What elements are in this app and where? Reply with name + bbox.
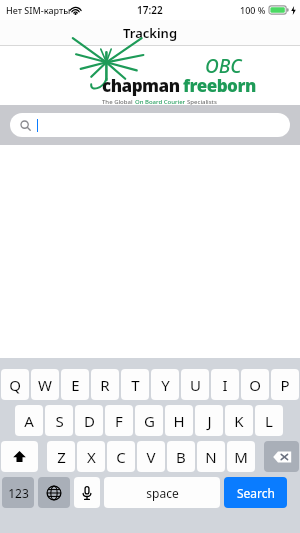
staticText: C (116, 447, 126, 467)
staticText: F (115, 411, 123, 431)
button[interactable]: H (165, 405, 193, 436)
button[interactable]: I (211, 369, 239, 400)
button[interactable]: Emoji keyboard (38, 477, 70, 508)
button[interactable]: R (91, 369, 119, 400)
staticText: The Global (102, 98, 135, 105)
button[interactable]: F (105, 405, 133, 436)
staticText: U (190, 375, 201, 395)
button[interactable]: Backspace (264, 441, 299, 472)
staticText: E (71, 375, 80, 395)
staticText: freeborn (183, 74, 256, 97)
button[interactable]: K (225, 405, 253, 436)
staticText: L (265, 411, 273, 431)
staticText: 17:22 (137, 3, 163, 17)
button[interactable]: V (137, 441, 165, 472)
button[interactable]: B (167, 441, 195, 472)
staticText: I (222, 375, 228, 395)
staticText: space (146, 485, 179, 501)
staticText: O (249, 375, 261, 395)
staticText: Specialists (187, 98, 217, 105)
button[interactable]: 123 (2, 477, 34, 508)
button[interactable]: Search (224, 477, 287, 508)
staticText: H (173, 411, 185, 431)
staticText: Y (161, 375, 170, 395)
staticText: A (24, 411, 34, 431)
button[interactable]: O (241, 369, 269, 400)
staticText: chapman (102, 74, 180, 97)
staticText: P (280, 375, 290, 395)
button[interactable]: Shift (1, 441, 38, 472)
button[interactable]: T (121, 369, 149, 400)
button[interactable]: C (107, 441, 135, 472)
staticText: W (38, 375, 52, 395)
button[interactable]: N (197, 441, 225, 472)
staticText: B (176, 447, 186, 467)
staticText: Нет SIM-карты (6, 4, 71, 16)
button[interactable]: U (181, 369, 209, 400)
staticText: D (84, 411, 95, 431)
button[interactable] (10, 113, 290, 137)
staticText: V (146, 447, 156, 467)
button[interactable]: L (255, 405, 283, 436)
staticText: K (234, 411, 244, 431)
staticText: R (100, 375, 110, 395)
staticText: Tracking (123, 24, 178, 42)
staticText: J (207, 411, 212, 431)
staticText: 123 (8, 485, 29, 501)
button[interactable]: J (195, 405, 223, 436)
staticText: M (234, 447, 248, 467)
staticText: OBC (205, 53, 242, 79)
staticText: On Board Courier (135, 98, 187, 105)
staticText: T (131, 375, 140, 395)
button[interactable]: A (15, 405, 43, 436)
button[interactable]: E (61, 369, 89, 400)
staticText: 100 % (240, 4, 266, 16)
button[interactable]: Q (1, 369, 29, 400)
staticText: Q (9, 375, 21, 395)
button[interactable]: Y (151, 369, 179, 400)
staticText: X (87, 447, 96, 467)
button[interactable]: Dictation (74, 477, 100, 508)
button[interactable]: D (75, 405, 103, 436)
staticText: S (55, 411, 64, 431)
staticText: N (205, 447, 217, 467)
button[interactable]: Z (47, 441, 75, 472)
button[interactable]: G (135, 405, 163, 436)
button[interactable]: S (45, 405, 73, 436)
button[interactable]: W (31, 369, 59, 400)
staticText: Z (57, 447, 66, 467)
button[interactable]: P (271, 369, 299, 400)
button[interactable]: M (227, 441, 255, 472)
staticText: G (144, 411, 155, 431)
button[interactable]: space (104, 477, 220, 508)
button[interactable]: X (77, 441, 105, 472)
staticText: Search (237, 485, 275, 501)
